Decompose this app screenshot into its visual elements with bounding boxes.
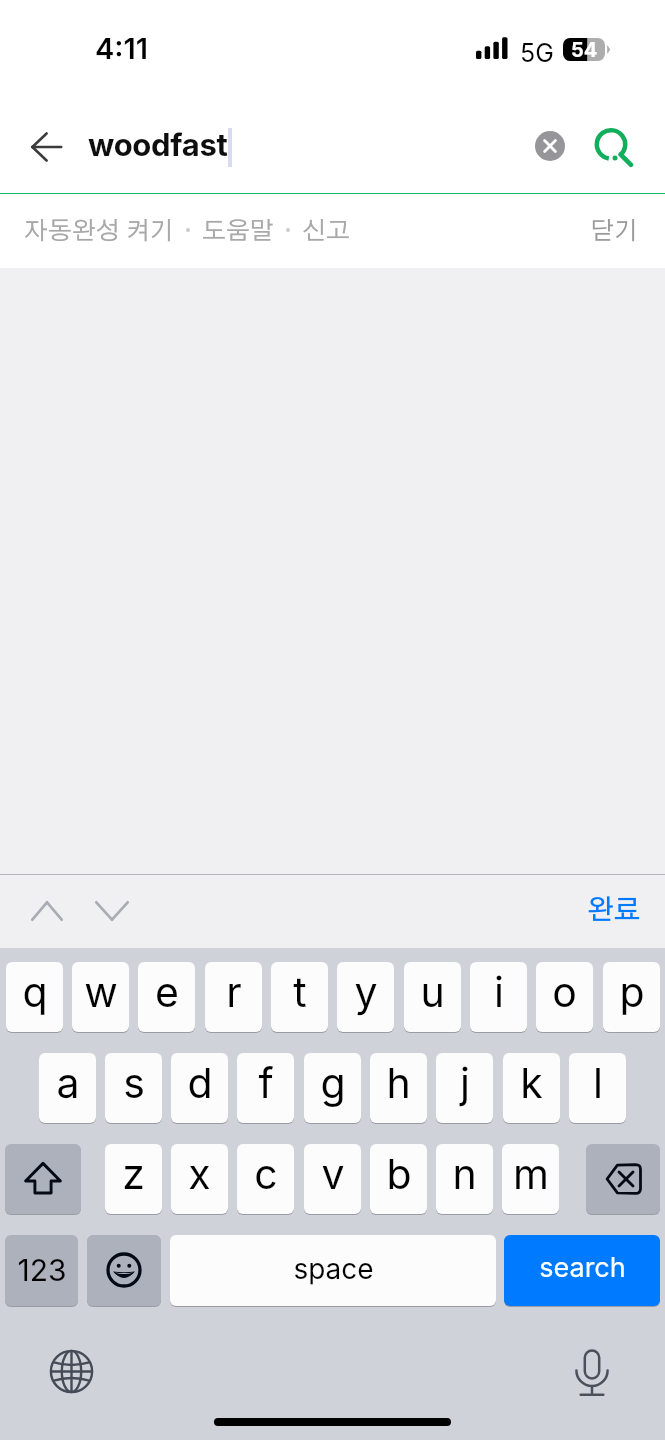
staticText: r [226, 967, 242, 1017]
staticText: s [123, 1058, 145, 1108]
button[interactable]: Search [586, 119, 638, 171]
button[interactable]: 123 [5, 1235, 78, 1306]
staticText: a [56, 1058, 80, 1108]
staticText: x [188, 1149, 211, 1199]
button[interactable]: i [470, 962, 527, 1032]
button[interactable]: z [105, 1144, 162, 1214]
button[interactable]: v [304, 1144, 361, 1214]
button[interactable]: p [603, 962, 660, 1032]
button[interactable]: s [105, 1053, 162, 1123]
button[interactable]: q [6, 962, 63, 1032]
button[interactable]: w [72, 962, 129, 1032]
button[interactable]: Dictation [560, 1340, 624, 1404]
button[interactable]: 신고 [302, 219, 350, 244]
button[interactable]: n [436, 1144, 493, 1214]
staticText: h [386, 1058, 411, 1108]
staticText: m [513, 1149, 549, 1199]
button[interactable]: Previous field [21, 885, 73, 937]
staticText: i [494, 967, 504, 1017]
staticText: search [539, 1251, 626, 1284]
staticText: 5G [520, 38, 554, 68]
button[interactable]: k [503, 1053, 560, 1123]
staticText: o [552, 967, 577, 1017]
button[interactable]: c [237, 1144, 294, 1214]
staticText: space [293, 1252, 374, 1286]
button[interactable]: Back [22, 122, 72, 172]
button[interactable]: 닫기 [590, 219, 638, 244]
button[interactable]: space [170, 1235, 496, 1306]
button[interactable]: Backspace [586, 1144, 660, 1214]
staticText: 닫기 [590, 219, 638, 244]
staticText: k [520, 1058, 543, 1108]
button[interactable]: 자동완성 켜기 [24, 219, 174, 244]
button[interactable]: b [370, 1144, 427, 1214]
staticText: n [452, 1149, 477, 1199]
button[interactable]: m [502, 1144, 559, 1214]
staticText: f [258, 1058, 274, 1108]
staticText: p [619, 967, 645, 1017]
button[interactable]: r [205, 962, 262, 1032]
staticText: 도움말 [202, 219, 274, 244]
staticText: w [84, 967, 118, 1017]
staticText: b [386, 1149, 412, 1199]
button[interactable]: Clear query [525, 121, 574, 170]
button[interactable]: u [404, 962, 461, 1032]
staticText: 54 [571, 38, 598, 62]
button[interactable]: Change keyboard [44, 1344, 98, 1398]
button[interactable]: y [337, 962, 394, 1032]
staticText: l [593, 1058, 603, 1108]
button[interactable]: 완료 [587, 897, 641, 925]
button[interactable]: Emoji keyboard [87, 1235, 161, 1306]
staticText: 123 [17, 1252, 67, 1288]
button[interactable]: o [536, 962, 593, 1032]
staticText: v [321, 1149, 345, 1199]
staticText: q [22, 967, 48, 1017]
button[interactable]: j [436, 1053, 493, 1123]
staticText: z [122, 1149, 145, 1199]
staticText: 4:11 [95, 31, 149, 66]
button[interactable]: h [370, 1053, 427, 1123]
staticText: 완료 [587, 897, 641, 925]
staticText: g [320, 1058, 346, 1108]
staticText: woodfast [88, 126, 228, 164]
staticText: j [460, 1058, 470, 1108]
staticText: t [293, 967, 307, 1017]
staticText: 자동완성 켜기 [24, 219, 174, 244]
button[interactable]: g [304, 1053, 361, 1123]
button[interactable]: Shift [5, 1144, 81, 1214]
button[interactable]: f [237, 1053, 294, 1123]
button[interactable]: x [171, 1144, 228, 1214]
staticText: 신고 [302, 219, 350, 244]
button[interactable]: l [569, 1053, 626, 1123]
button[interactable]: 도움말 [202, 219, 274, 244]
button[interactable]: a [39, 1053, 96, 1123]
button[interactable]: t [271, 962, 328, 1032]
button[interactable]: Next field [86, 885, 138, 937]
staticText: c [254, 1149, 278, 1199]
staticText: e [155, 967, 179, 1017]
staticText: u [420, 967, 445, 1017]
staticText: d [187, 1058, 213, 1108]
button[interactable]: e [138, 962, 195, 1032]
button[interactable]: search [504, 1235, 660, 1306]
staticText: y [354, 967, 378, 1017]
button[interactable]: d [171, 1053, 228, 1123]
